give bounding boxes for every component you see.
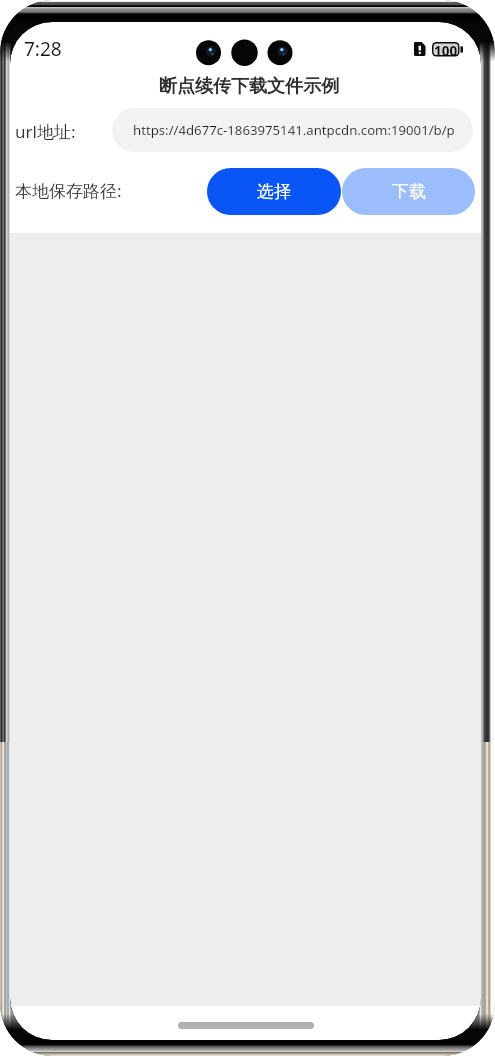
- staticText: 本地保存路径:: [15, 179, 122, 202]
- staticText: 7:28: [24, 36, 62, 62]
- button[interactable]: 下载: [342, 168, 475, 215]
- staticText: 100: [434, 42, 458, 57]
- staticText: 下载: [392, 181, 426, 202]
- staticText: https://4d677c-1863975141.antpcdn.com:19…: [133, 121, 455, 139]
- button[interactable]: https://4d677c-1863975141.antpcdn.com:19…: [112, 108, 473, 152]
- staticText: 断点续传下载文件示例: [159, 75, 339, 98]
- other: SIM card alert: [414, 42, 426, 56]
- staticText: url地址:: [15, 120, 76, 143]
- button[interactable]: 选择: [207, 168, 341, 215]
- staticText: 选择: [257, 181, 291, 202]
- other: Battery 100 percent: [432, 42, 463, 57]
